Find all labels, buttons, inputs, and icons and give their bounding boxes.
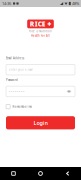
staticText: enter your e-mail	[9, 68, 33, 71]
button[interactable]: Remember me	[6, 104, 75, 109]
staticText: Rice is Nutrition	[29, 29, 52, 33]
staticText: 48%	[72, 1, 79, 6]
staticText: 14:36	[2, 1, 11, 6]
button[interactable]: Login	[6, 116, 75, 129]
staticText: Login	[33, 119, 47, 126]
staticText: ••••••••	[9, 89, 25, 94]
staticText: Email Address	[6, 56, 24, 60]
button[interactable]: Show password	[66, 88, 72, 94]
staticText: Remember me	[12, 105, 32, 108]
button[interactable]: Home	[27, 167, 54, 180]
button[interactable]: Back	[54, 167, 81, 180]
staticText: Password	[6, 78, 18, 82]
button[interactable]: Recents	[0, 167, 27, 180]
staticText: RICE	[30, 19, 46, 28]
staticText: Health For All	[31, 34, 50, 37]
